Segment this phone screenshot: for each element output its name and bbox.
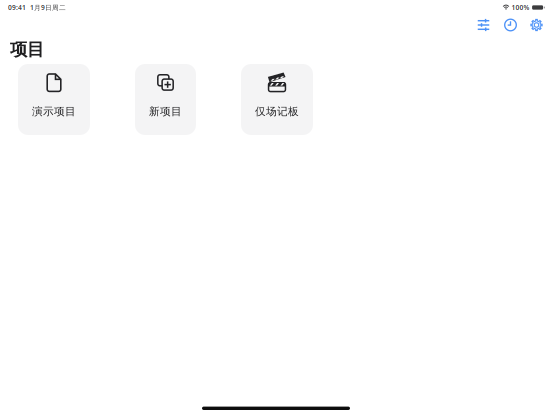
staticText: 09:41 [8, 3, 26, 12]
staticText: 项目 [10, 39, 44, 60]
button[interactable]: Filters [470, 15, 497, 35]
staticText: 仅场记板 [255, 105, 299, 118]
staticText: 新项目 [149, 105, 182, 118]
button[interactable]: 仅场记板 [241, 64, 313, 135]
staticText: 演示项目 [32, 105, 76, 118]
staticText: 100% [512, 3, 530, 12]
button[interactable]: Settings [524, 15, 549, 35]
staticText: 1月9日周二 [30, 3, 66, 12]
button[interactable]: 演示项目 [18, 64, 90, 135]
button[interactable]: Recents [497, 15, 524, 35]
button[interactable]: 新项目 [135, 64, 196, 135]
